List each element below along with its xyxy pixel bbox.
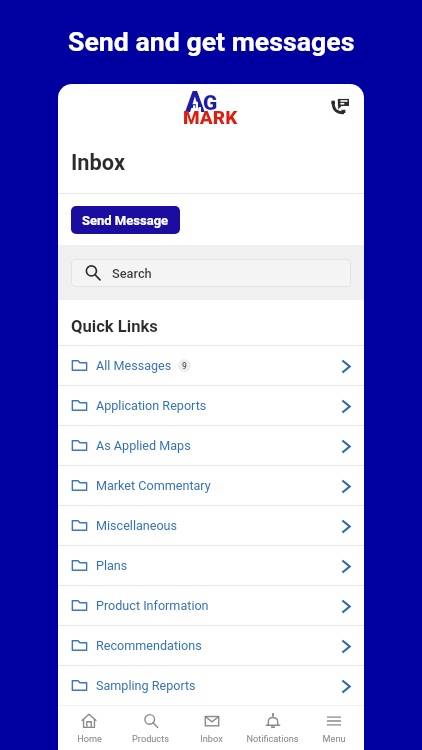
button[interactable]: As Applied Maps [58, 426, 364, 465]
button[interactable]: Home [58, 706, 120, 750]
staticText: Send Message [82, 213, 169, 228]
staticText: 9 [182, 361, 187, 371]
staticText: All Messages [96, 358, 172, 373]
button[interactable]: Notifications [242, 706, 303, 750]
button[interactable]: Application Reports [58, 386, 364, 425]
button[interactable]: Send Message [71, 206, 180, 234]
button[interactable]: Search [71, 259, 351, 287]
button[interactable]: Sampling Reports [58, 666, 364, 705]
staticText: Application Reports [96, 398, 207, 413]
staticText: G [203, 91, 218, 116]
staticText: Product Information [96, 598, 209, 613]
button[interactable]: Inbox [181, 706, 242, 750]
button[interactable]: Recommendations [58, 626, 364, 665]
staticText: Products [132, 733, 169, 744]
staticText: Notifications [246, 733, 299, 744]
staticText: Search [112, 266, 152, 281]
button[interactable]: Miscellaneous [58, 506, 364, 545]
button[interactable]: Contact support [325, 90, 355, 120]
staticText: A [185, 85, 205, 119]
staticText: MARK [183, 106, 238, 128]
button[interactable]: Market Commentary [58, 466, 364, 505]
staticText: Market Commentary [96, 478, 211, 493]
staticText: Menu [322, 733, 346, 744]
staticText: Sampling Reports [96, 678, 196, 693]
button[interactable]: Product Information [58, 586, 364, 625]
button[interactable]: Plans [58, 546, 364, 585]
button[interactable]: Products [120, 706, 181, 750]
staticText: As Applied Maps [96, 438, 191, 453]
staticText: Recommendations [96, 638, 202, 653]
staticText: Quick Links [71, 317, 158, 336]
button[interactable]: Menu [303, 706, 364, 750]
staticText: Send and get messages [68, 26, 355, 57]
staticText: Inbox [71, 150, 126, 176]
staticText: Miscellaneous [96, 518, 178, 533]
staticText: Plans [96, 558, 128, 573]
button[interactable]: All Messages [58, 346, 364, 385]
staticText: Inbox [200, 733, 223, 744]
staticText: Home [77, 733, 102, 744]
